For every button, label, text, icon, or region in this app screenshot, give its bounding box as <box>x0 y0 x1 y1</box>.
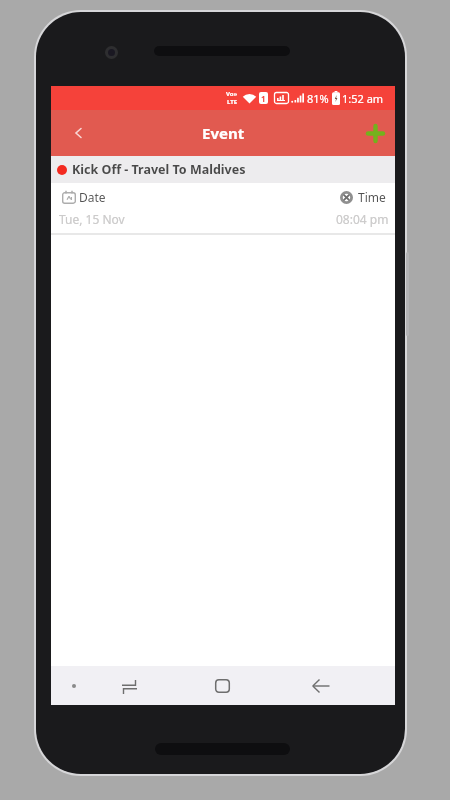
staticText: 1:52 am <box>342 91 384 106</box>
button[interactable]: Kick Off - Travel To Maldives <box>51 156 395 183</box>
staticText: Vo» <box>226 90 238 98</box>
staticText: Tue, 15 Nov <box>59 211 125 227</box>
button[interactable] <box>70 682 78 690</box>
button[interactable] <box>115 672 143 700</box>
button[interactable] <box>307 672 335 700</box>
staticText: Time <box>358 189 386 205</box>
staticText: 08:04 pm <box>336 211 389 227</box>
staticText: 1 <box>261 93 266 104</box>
staticText: Kick Off - Travel To Maldives <box>72 161 246 178</box>
button[interactable] <box>65 120 91 146</box>
staticText: Date <box>79 189 106 205</box>
staticText: LTE <box>227 98 238 106</box>
staticText: 81% <box>307 91 329 106</box>
button[interactable] <box>362 120 388 146</box>
staticText: Event <box>202 123 245 143</box>
button[interactable] <box>208 672 236 700</box>
